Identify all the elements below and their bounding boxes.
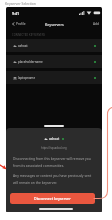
staticText: https://squadcal.org: [41, 146, 67, 150]
button[interactable]: ashoat: [6, 39, 102, 52]
staticText: Disconnect keyserver: [34, 196, 71, 201]
staticText: Profile: [16, 22, 26, 26]
button[interactable]: Disconnect keyserver: [10, 193, 95, 204]
staticText: Any messages or content you have previou…: [13, 173, 95, 185]
staticText: CONNECTED KEYSERVERS: [12, 33, 46, 37]
staticText: 9:41: [12, 11, 20, 16]
button[interactable]: laptopname: [6, 71, 102, 84]
staticText: Keyserver Selection: [5, 1, 36, 6]
staticText: Disconnecting from this keyserver will r…: [13, 156, 95, 168]
staticText: Keyservers: [45, 22, 64, 27]
button[interactable]: Profile: [11, 19, 26, 29]
staticText: laptopname: [18, 76, 36, 80]
staticText: ashoat: [18, 44, 28, 48]
staticText: placeholdername: [18, 60, 43, 64]
button[interactable]: Add: [90, 22, 102, 26]
staticText: ashoat: [49, 137, 60, 141]
button[interactable]: placeholdername: [6, 55, 102, 68]
